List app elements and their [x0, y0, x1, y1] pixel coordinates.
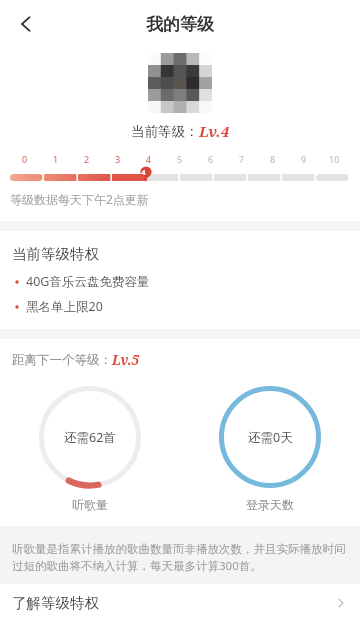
staticText: 4 [146, 153, 152, 165]
staticText: 听歌量 [72, 497, 108, 512]
staticText: 10 [329, 153, 340, 165]
staticText: 40G音乐云盘免费容量 [26, 273, 150, 290]
staticText: 听歌量是指累计播放的歌曲数量而非播放次数，并且实际播放时间过短的歌曲将不纳入计算… [12, 542, 348, 574]
staticText: Lv.4 [199, 121, 230, 141]
staticText: 5 [177, 153, 183, 165]
staticText: 了解等级特权 [12, 594, 334, 612]
staticText: 2 [84, 153, 90, 165]
staticText: 8 [270, 153, 276, 165]
staticText: 9 [301, 153, 307, 165]
staticText: 7 [239, 153, 245, 165]
button[interactable]: 了解等级特权 [0, 584, 360, 622]
staticText: 我的等级 [146, 14, 214, 35]
staticText: 当前等级特权 [12, 245, 99, 263]
staticText: 距离下一个等级： [12, 352, 112, 368]
button[interactable]: Back [6, 4, 46, 44]
staticText: 黑名单上限20 [26, 298, 103, 315]
staticText: 0 [22, 153, 28, 165]
staticText: Lv.5 [112, 351, 140, 369]
staticText: 登录天数 [246, 497, 294, 512]
staticText: 3 [115, 153, 121, 165]
staticText: 当前等级： [131, 123, 199, 140]
staticText: 1 [53, 153, 59, 165]
staticText: 还需0天 [248, 429, 293, 446]
staticText: 6 [208, 153, 214, 165]
staticText: 还需62首 [64, 429, 116, 446]
staticText: 4 [141, 167, 146, 177]
staticText: 等级数据每天下午2点更新 [10, 191, 149, 207]
